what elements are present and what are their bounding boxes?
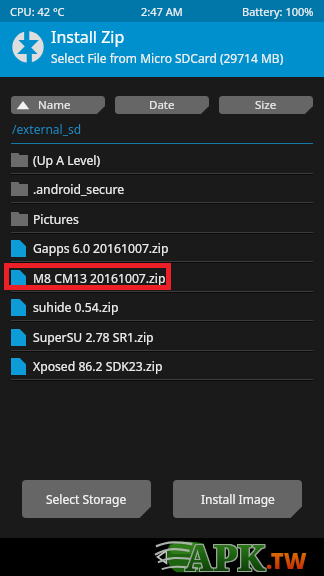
staticText: APK xyxy=(185,534,266,572)
staticText: APK xyxy=(186,534,267,572)
staticText: suhide 0.54.zip xyxy=(33,299,119,316)
staticText: Name xyxy=(38,97,71,113)
staticText: APK xyxy=(186,533,267,571)
staticText: Size xyxy=(255,97,277,113)
button[interactable]: Back xyxy=(147,542,177,572)
button[interactable]: SuperSU 2.78 SR1.zip xyxy=(0,322,324,352)
button[interactable]: suhide 0.54.zip xyxy=(0,292,324,322)
staticText: .android_secure xyxy=(33,181,125,198)
staticText: .TW xyxy=(266,545,307,575)
staticText: CPU: 42 °C xyxy=(10,4,65,19)
staticText: SuperSU 2.78 SR1.zip xyxy=(33,329,154,346)
button[interactable]: Size xyxy=(219,96,313,114)
staticText: APK xyxy=(186,532,267,570)
staticText: Select Storage xyxy=(46,491,127,507)
button[interactable]: Install Image xyxy=(173,480,302,518)
staticText: (Up A Level) xyxy=(33,152,101,169)
staticText: APK xyxy=(185,532,266,570)
button[interactable]: M8 CM13 20161007.zip xyxy=(0,263,324,293)
staticText: M8 CM13 20161007.zip xyxy=(33,270,166,287)
button[interactable]: (Up A Level) xyxy=(0,145,324,175)
staticText: Battery: 100% xyxy=(242,4,314,19)
staticText: APK xyxy=(185,533,266,571)
button[interactable]: Name xyxy=(11,96,105,114)
button[interactable]: Pictures xyxy=(0,204,324,234)
button[interactable]: Gapps 6.0 20161007.zip xyxy=(0,233,324,263)
staticText: Pictures xyxy=(33,211,79,228)
staticText: Xposed 86.2 SDK23.zip xyxy=(33,358,163,375)
button[interactable]: Date xyxy=(115,96,209,114)
staticText: Select File from Micro SDCard (29714 MB) xyxy=(51,50,284,66)
button[interactable]: Xposed 86.2 SDK23.zip xyxy=(0,351,324,381)
staticText: Date xyxy=(149,97,175,113)
button[interactable]: .android_secure xyxy=(0,174,324,204)
staticText: 2:47 AM xyxy=(141,4,183,19)
staticText: APK xyxy=(184,533,265,571)
staticText: APK xyxy=(184,532,265,570)
staticText: Gapps 6.0 20161007.zip xyxy=(33,240,169,257)
staticText: APK xyxy=(184,534,265,572)
button[interactable]: Select Storage xyxy=(22,480,151,518)
staticText: /external_sd xyxy=(12,121,82,137)
staticText: Install Image xyxy=(201,491,275,507)
staticText: Install Zip xyxy=(51,26,125,48)
